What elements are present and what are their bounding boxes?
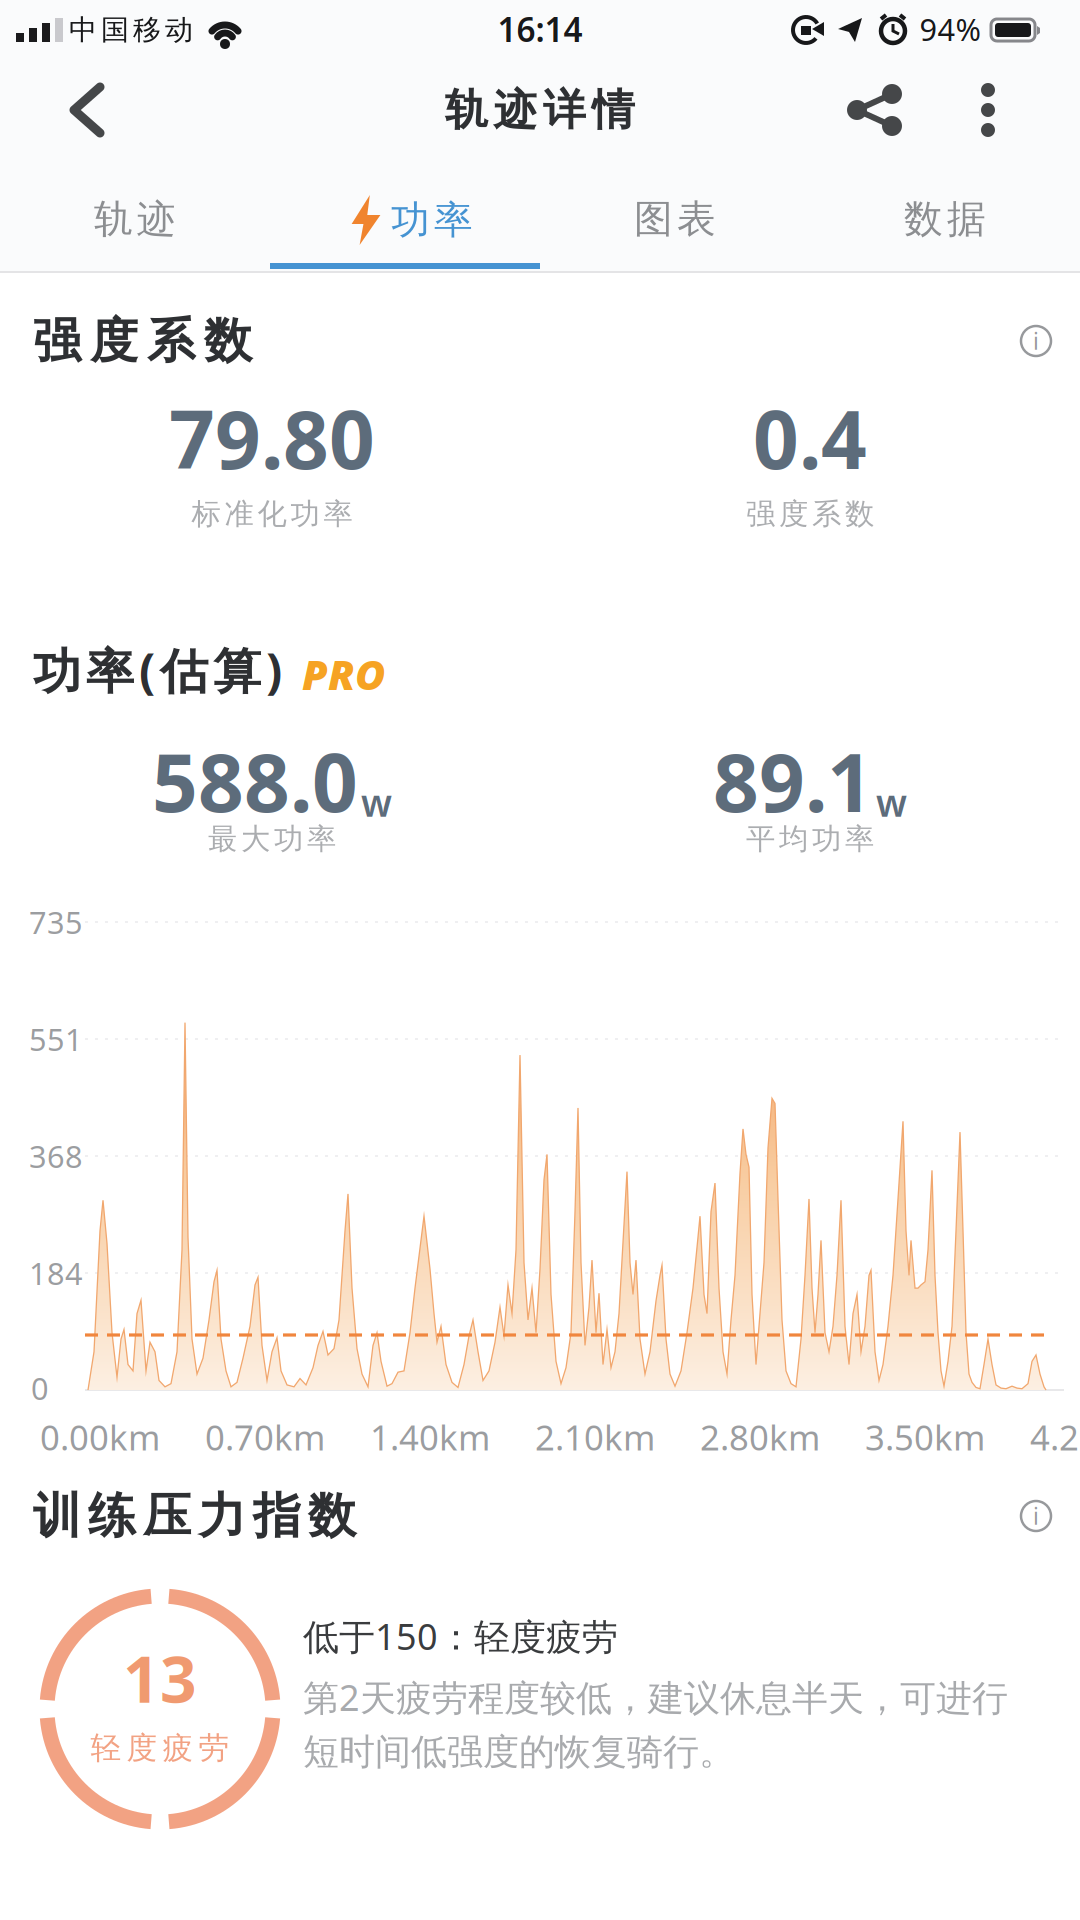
staticText: 强度系数	[33, 311, 252, 370]
staticText: 94%	[919, 9, 980, 49]
button[interactable]: 返回	[69, 84, 105, 136]
button[interactable]: 说明	[1019, 324, 1053, 358]
staticText: 数据	[904, 195, 986, 243]
button[interactable]: 功率	[270, 171, 540, 267]
staticText: w	[361, 777, 392, 827]
staticText: 79.80	[169, 385, 375, 491]
staticText: 训练压力指数	[33, 1486, 356, 1545]
staticText: 图表	[634, 195, 716, 243]
staticText: 2.10km	[535, 1414, 655, 1460]
staticText: 0.4	[753, 385, 867, 491]
staticText: 16:14	[497, 7, 582, 51]
staticText: 4.20km	[1030, 1414, 1080, 1460]
staticText: 短时间低强度的恢复骑行。	[303, 1730, 735, 1774]
button[interactable]: 分享	[848, 79, 904, 141]
button[interactable]: 图表	[540, 171, 810, 267]
staticText: 368	[29, 1136, 83, 1176]
staticText: 184	[29, 1253, 83, 1293]
staticText: PRO	[302, 647, 385, 701]
staticText: i	[1033, 326, 1039, 356]
staticText: 89.1	[713, 728, 873, 834]
staticText: 功率(估算)	[33, 638, 282, 702]
staticText: w	[876, 777, 907, 827]
staticText: 551	[29, 1019, 83, 1059]
staticText: 588.0	[152, 728, 358, 834]
staticText: 低于150：轻度疲劳	[303, 1612, 618, 1660]
staticText: 功率	[391, 196, 473, 244]
staticText: 平均功率	[746, 821, 874, 857]
button[interactable]: 轨迹	[0, 171, 270, 267]
staticText: 13	[123, 1635, 197, 1720]
staticText: 0.00km	[40, 1414, 160, 1460]
staticText: i	[1033, 1501, 1039, 1531]
staticText: 1.40km	[370, 1414, 490, 1460]
button[interactable]: 说明	[1019, 1499, 1053, 1533]
staticText: 第2天疲劳程度较低，建议休息半天，可进行	[303, 1673, 1008, 1721]
staticText: 3.50km	[865, 1414, 985, 1460]
staticText: 735	[29, 902, 83, 942]
staticText: 标准化功率	[191, 496, 352, 532]
button[interactable]: 更多	[981, 83, 995, 137]
staticText: 0	[31, 1368, 49, 1408]
staticText: 2.80km	[700, 1414, 820, 1460]
staticText: 轨迹详情	[445, 84, 635, 136]
staticText: 轻度疲劳	[90, 1729, 229, 1767]
staticText: 轨迹	[94, 195, 176, 243]
staticText: 中国移动	[69, 13, 193, 47]
staticText: 0.70km	[205, 1414, 325, 1460]
staticText: 最大功率	[208, 821, 336, 857]
staticText: 强度系数	[746, 496, 874, 532]
button[interactable]: 数据	[810, 171, 1080, 267]
